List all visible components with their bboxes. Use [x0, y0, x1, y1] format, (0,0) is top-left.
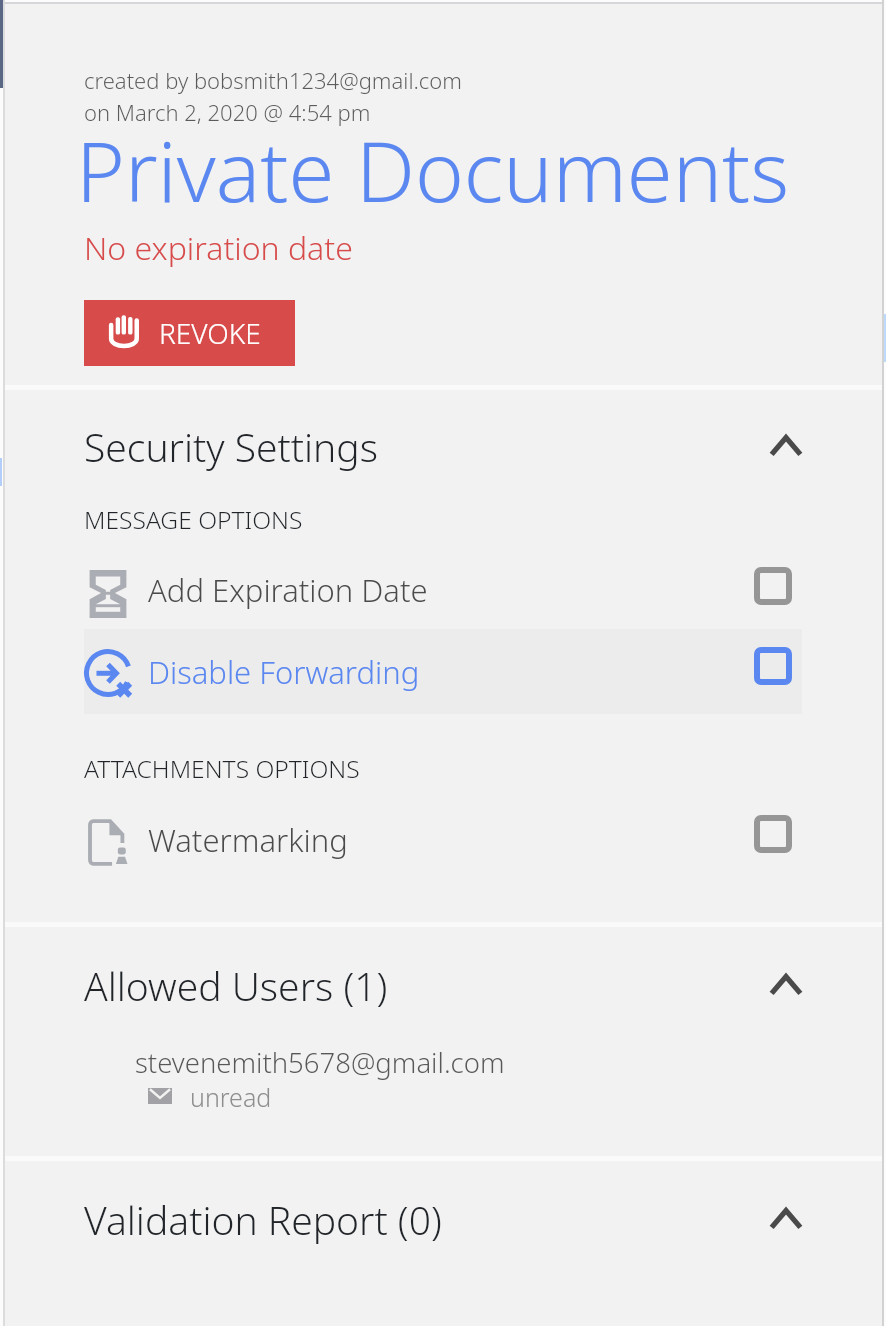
- staticText: stevenemith5678@gmail.com: [135, 1044, 505, 1081]
- staticText: MESSAGE OPTIONS: [84, 503, 303, 537]
- button[interactable]: REVOKE: [84, 300, 295, 366]
- button[interactable]: Disable Forwarding: [84, 629, 802, 714]
- button[interactable]: Add Expiration Date: [84, 544, 802, 629]
- other: Collapse section: [769, 1208, 803, 1230]
- staticText: on March 2, 2020 @ 4:54 pm: [84, 97, 371, 127]
- staticText: created by bobsmith1234@gmail.com: [84, 65, 462, 95]
- staticText: Add Expiration Date: [148, 569, 428, 611]
- button[interactable]: Security Settings: [0, 407, 886, 485]
- staticText: unread: [190, 1080, 272, 1114]
- staticText: Validation Report (0): [84, 1193, 442, 1246]
- staticText: Allowed Users (1): [84, 959, 388, 1012]
- staticText: Disable Forwarding: [148, 651, 420, 693]
- staticText: ATTACHMENTS OPTIONS: [84, 752, 360, 786]
- button[interactable]: Allowed Users (1): [0, 946, 886, 1024]
- button[interactable]: Validation Report (0): [0, 1180, 886, 1258]
- button[interactable]: Watermarking: [84, 797, 802, 882]
- staticText: Watermarking: [148, 819, 348, 861]
- staticText: Security Settings: [84, 420, 378, 473]
- staticText: No expiration date: [84, 226, 353, 270]
- other: Collapse section: [769, 435, 803, 457]
- staticText: REVOKE: [159, 314, 261, 352]
- other: Collapse section: [769, 974, 803, 996]
- staticText: Private Documents: [76, 113, 790, 226]
